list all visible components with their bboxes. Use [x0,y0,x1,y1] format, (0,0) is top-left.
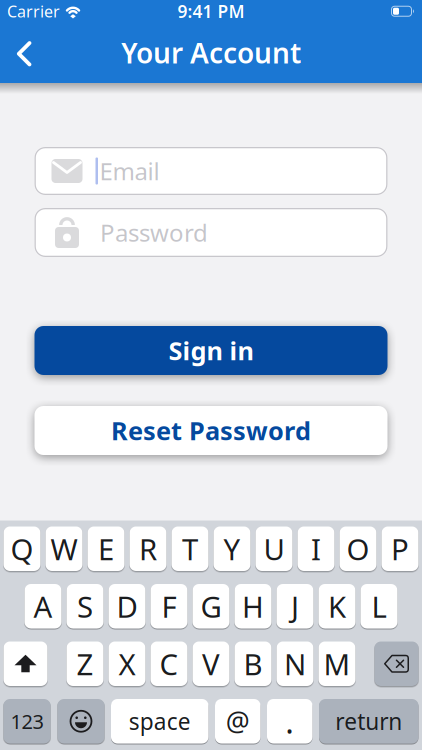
staticText: space [129,706,191,736]
button[interactable]: space [111,699,208,743]
button[interactable]: Email [34,147,387,195]
button[interactable]: E [87,526,124,571]
staticText: V [202,644,220,683]
staticText: C [159,644,178,683]
staticText: Z [76,644,93,683]
button[interactable]: Emoji [57,699,104,743]
button[interactable]: Sign in [34,326,387,375]
button[interactable]: Shift [3,641,47,686]
button[interactable]: Reset Password [34,406,387,455]
staticText: O [346,529,369,568]
button[interactable]: B [234,641,271,686]
button[interactable]: A [24,584,61,628]
staticText: L [371,587,386,626]
button[interactable]: P [381,526,418,571]
button[interactable]: K [318,584,355,628]
button[interactable]: W [45,526,82,571]
staticText: U [263,529,284,568]
button[interactable]: Z [66,641,103,686]
staticText: A [33,587,52,626]
button[interactable]: R [129,526,166,571]
staticText: I [311,529,321,568]
button[interactable]: S [66,584,103,628]
staticText: G [200,587,221,626]
button[interactable]: Password [34,208,387,257]
staticText: Email [99,155,159,187]
staticText: return [335,706,402,736]
staticText: X [118,644,135,683]
staticText: S [77,587,93,626]
staticText: F [161,587,176,626]
staticText: W [50,529,77,568]
staticText: Y [223,529,240,568]
staticText: K [328,587,346,626]
button[interactable]: @ [215,699,260,743]
staticText: P [391,529,409,568]
staticText: Password [100,217,208,248]
staticText: R [139,529,157,568]
button[interactable]: G [192,584,229,628]
button[interactable]: V [192,641,229,686]
staticText: . [285,700,294,742]
staticText: N [284,644,306,683]
staticText: 9:41 PM [177,0,244,23]
button[interactable]: C [150,641,187,686]
button[interactable]: return [319,699,418,743]
staticText: @ [226,703,250,739]
button[interactable]: O [339,526,376,571]
staticText: Sign in [168,334,253,367]
button[interactable]: . [267,699,312,743]
staticText: Your Account [121,34,301,71]
button[interactable]: H [234,584,271,628]
button[interactable]: N [276,641,313,686]
staticText: T [182,529,198,568]
staticText: Carrier [7,1,60,22]
staticText: B [243,644,262,683]
staticText: E [98,529,114,568]
button[interactable]: Q [3,526,40,571]
button[interactable]: X [108,641,145,686]
button[interactable]: D [108,584,145,628]
button[interactable]: I [297,526,334,571]
button[interactable]: M [318,641,355,686]
staticText: M [323,644,350,683]
button[interactable]: Y [213,526,250,571]
staticText: H [242,587,264,626]
staticText: Reset Password [111,414,311,447]
staticText: J [291,587,299,626]
staticText: Q [10,529,33,568]
staticText: D [116,587,137,626]
button[interactable]: Delete [374,641,418,686]
button[interactable]: Back [0,39,31,66]
staticText: 123 [10,708,43,735]
button[interactable]: F [150,584,187,628]
button[interactable]: L [360,584,397,628]
button[interactable]: U [255,526,292,571]
button[interactable]: J [276,584,313,628]
button[interactable]: Numbers [3,699,50,743]
button[interactable]: T [171,526,208,571]
